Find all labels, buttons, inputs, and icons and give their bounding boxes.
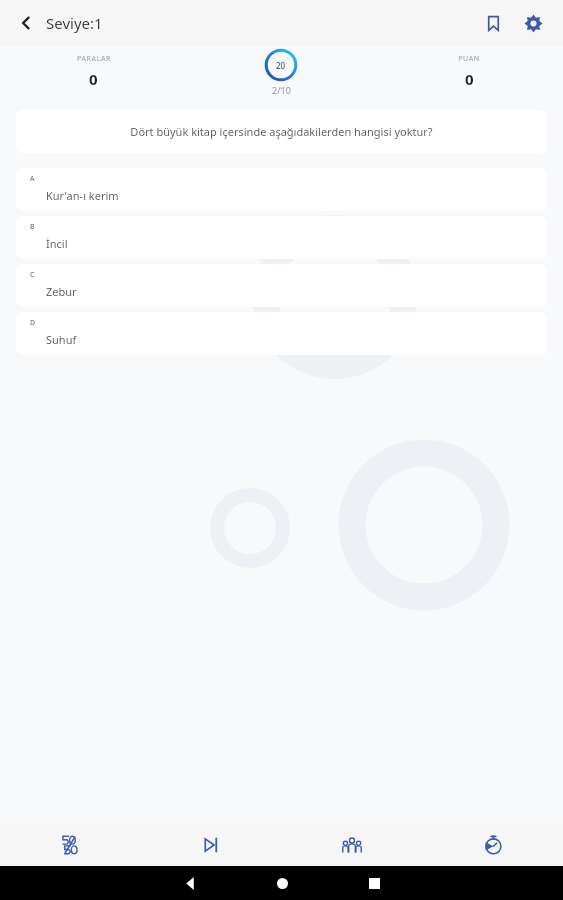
button[interactable]: B — [16, 216, 547, 259]
staticText: A — [30, 174, 35, 184]
staticText: Zebur — [46, 284, 77, 299]
staticText: Dört büyük kitap içersinde aşağıdakilerd… — [130, 124, 433, 139]
staticText: 2/10 — [272, 84, 291, 96]
button[interactable]: D — [16, 312, 547, 355]
button[interactable]: Fifty fifty — [0, 824, 140, 866]
button[interactable]: Back — [8, 5, 44, 41]
button[interactable]: Ask the audience — [281, 824, 422, 866]
staticText: Seviye:1 — [46, 13, 103, 33]
staticText: PUAN — [458, 54, 480, 64]
button[interactable]: Dört büyük kitap içersinde aşağıdakilerd… — [16, 110, 547, 153]
staticText: C — [30, 270, 35, 280]
staticText: 20 — [276, 60, 286, 71]
button[interactable]: A — [16, 168, 547, 211]
staticText: Kur'an-ı kerim — [46, 188, 119, 203]
staticText: 0 — [89, 69, 98, 89]
button[interactable]: Skip question — [140, 824, 281, 866]
button[interactable]: Extra time — [422, 824, 563, 866]
staticText: B — [30, 222, 35, 232]
staticText: Suhuf — [46, 332, 77, 347]
staticText: İncil — [46, 236, 68, 251]
staticText: 0 — [465, 69, 474, 89]
staticText: D — [30, 318, 36, 328]
button[interactable]: Settings — [513, 3, 553, 43]
button[interactable]: Bookmark — [473, 3, 513, 43]
staticText: PARALAR — [77, 54, 111, 64]
button[interactable]: C — [16, 264, 547, 307]
